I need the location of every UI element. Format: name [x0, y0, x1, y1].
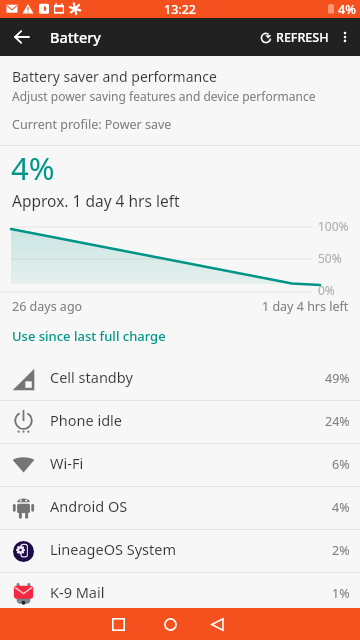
button[interactable]: Back	[195, 608, 239, 640]
button[interactable]: K-9 Mail	[0, 573, 360, 615]
staticText: Cell standby	[50, 367, 133, 387]
button[interactable]: REFRESH	[256, 24, 333, 51]
staticText: Battery	[50, 27, 101, 47]
staticText: Use since last full charge	[12, 327, 166, 345]
staticText: 6%	[332, 456, 350, 473]
staticText: 50%	[318, 250, 342, 266]
staticText: 100%	[318, 218, 349, 234]
staticText: 4%	[11, 147, 55, 189]
staticText: Battery saver and performance	[12, 67, 217, 86]
button[interactable]: Phone idle	[0, 401, 360, 443]
staticText: 1%	[332, 585, 350, 602]
staticText: 4%	[332, 499, 350, 516]
button[interactable]: Android OS	[0, 487, 360, 529]
staticText: REFRESH	[276, 29, 329, 46]
staticText: Adjust power saving features and device …	[12, 88, 316, 104]
button[interactable]: Recent apps	[96, 608, 140, 640]
staticText: 49%	[325, 370, 350, 387]
staticText: LineageOS System	[50, 539, 177, 559]
staticText: Wi-Fi	[50, 453, 84, 473]
staticText: 24%	[325, 413, 350, 430]
button[interactable]: Home	[148, 608, 192, 640]
button[interactable]: LineageOS System	[0, 530, 360, 572]
button[interactable]: Cell standby	[0, 358, 360, 400]
staticText: 13:22	[164, 1, 197, 18]
staticText: Current profile: Power save	[12, 116, 172, 133]
staticText: K-9 Mail	[50, 582, 105, 602]
staticText: Android OS	[50, 496, 128, 516]
button[interactable]: More options	[330, 18, 360, 56]
staticText: 2%	[332, 542, 350, 559]
button[interactable]: Current profile: Power save	[0, 112, 360, 136]
staticText: Approx. 1 day 4 hrs left	[12, 190, 180, 211]
staticText: 26 days ago	[12, 298, 83, 315]
staticText: 0%	[318, 282, 335, 298]
staticText: 1 day 4 hrs left	[262, 298, 349, 315]
staticText: 4%	[338, 1, 356, 18]
button[interactable]: Use since last full charge	[0, 325, 360, 347]
button[interactable]: Back	[3, 18, 41, 56]
staticText: Phone idle	[50, 410, 122, 430]
button[interactable]: Wi-Fi	[0, 444, 360, 486]
button[interactable]: Battery saver and performance	[0, 56, 360, 104]
